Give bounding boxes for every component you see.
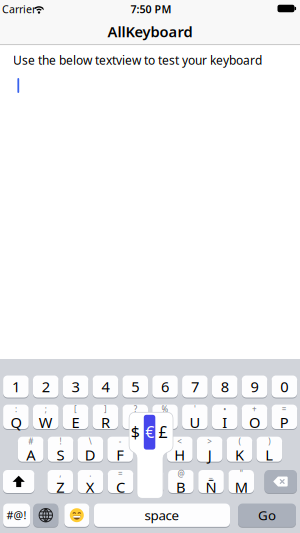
button[interactable]: 9 <box>242 375 267 398</box>
staticText: ) <box>268 436 270 447</box>
staticText: [ <box>74 404 77 414</box>
button[interactable]: + <box>242 405 267 430</box>
staticText: Y <box>161 413 169 432</box>
button[interactable]: & <box>138 470 163 494</box>
button[interactable]: 8 <box>212 375 237 398</box>
staticText: P <box>280 413 289 432</box>
button[interactable]: # <box>18 437 43 463</box>
staticText: H <box>174 445 185 464</box>
staticText: < <box>177 436 182 447</box>
staticText: 9 <box>250 377 258 396</box>
button[interactable]: < <box>167 437 193 463</box>
button[interactable]: , <box>47 470 73 494</box>
staticText: C <box>116 477 125 497</box>
button[interactable]: = <box>272 405 297 430</box>
button[interactable]: ( <box>227 437 252 463</box>
staticText: 4 <box>101 377 109 396</box>
button[interactable]: = <box>108 470 133 494</box>
button[interactable]: & <box>137 437 163 463</box>
button[interactable]: @ <box>168 470 194 494</box>
staticText: F <box>116 445 124 464</box>
staticText: Z <box>56 477 64 497</box>
staticText: # <box>28 436 33 447</box>
button[interactable]: 6 <box>152 375 178 398</box>
button[interactable]: ; <box>33 405 58 430</box>
button[interactable]: 2 <box>33 375 58 398</box>
staticText: $ <box>131 421 140 442</box>
staticText: 3 <box>72 377 80 396</box>
button[interactable]: #@! <box>3 504 30 528</box>
staticText: space <box>144 506 179 524</box>
button[interactable]: ] <box>93 405 118 430</box>
staticText: \ <box>89 436 92 447</box>
button[interactable]: ? <box>122 405 148 430</box>
button[interactable]: % <box>152 405 178 430</box>
staticText: #@! <box>7 508 27 522</box>
staticText: @ <box>177 468 184 479</box>
staticText: T <box>131 413 139 432</box>
button[interactable]: 5 <box>122 375 148 398</box>
staticText: X <box>86 477 95 497</box>
staticText: % <box>161 404 168 414</box>
button[interactable]: [ <box>63 405 88 430</box>
button[interactable]: 1 <box>3 375 29 398</box>
staticText: J <box>208 445 212 464</box>
staticText: , <box>59 468 61 479</box>
button[interactable]: ' <box>182 405 208 430</box>
staticText: I <box>222 413 227 432</box>
button[interactable]: 3 <box>63 375 88 398</box>
button[interactable]: 4 <box>93 375 118 398</box>
button[interactable]: • <box>212 405 237 430</box>
staticText: 7 <box>191 377 199 396</box>
button[interactable]: Shift <box>3 470 34 494</box>
staticText: ' <box>194 404 196 414</box>
button[interactable]: " <box>228 470 254 494</box>
staticText: R <box>101 413 110 432</box>
button[interactable]: : <box>3 405 29 430</box>
button[interactable]: \ <box>77 437 103 463</box>
button[interactable]: Next keyboard <box>33 504 58 528</box>
staticText: 2 <box>42 377 50 396</box>
staticText: ? <box>134 404 137 414</box>
button[interactable]: - <box>107 437 133 463</box>
staticText: D <box>85 445 96 464</box>
staticText: £ <box>158 421 167 442</box>
button[interactable]: Delete <box>264 470 297 494</box>
staticText: 1 <box>12 377 20 396</box>
staticText: 5 <box>131 377 139 396</box>
staticText: U <box>189 413 200 432</box>
staticText: 8 <box>221 377 229 396</box>
staticText: ; <box>45 404 47 414</box>
staticText: = <box>282 404 287 414</box>
staticText: AllKeyboard <box>107 22 192 41</box>
staticText: _ <box>209 468 213 479</box>
button[interactable]: > <box>197 437 222 463</box>
staticText: + <box>252 404 257 414</box>
button[interactable]: . <box>78 470 103 494</box>
staticText: Carrier <box>2 2 36 16</box>
staticText: ( <box>238 436 240 447</box>
button[interactable]: 7 <box>182 375 208 398</box>
button[interactable]: ) <box>256 437 282 463</box>
staticText: O <box>249 413 260 432</box>
staticText: E <box>72 413 80 432</box>
staticText: ] <box>104 404 107 414</box>
staticText: = <box>118 468 123 479</box>
staticText: S <box>56 445 64 464</box>
staticText: Q <box>10 413 21 432</box>
staticText: " <box>240 468 243 479</box>
staticText: L <box>265 445 273 464</box>
staticText: G <box>144 445 155 464</box>
staticText: 0 <box>280 377 288 396</box>
button[interactable]: Space <box>94 504 230 528</box>
button[interactable]: _ <box>198 470 224 494</box>
button[interactable]: Go <box>238 504 296 528</box>
button[interactable]: 0 <box>272 375 297 398</box>
button[interactable]: Emoji <box>64 504 89 528</box>
staticText: M <box>235 477 248 497</box>
staticText: . <box>89 468 91 479</box>
staticText: 6 <box>161 377 169 396</box>
button[interactable]: ! <box>48 437 73 463</box>
